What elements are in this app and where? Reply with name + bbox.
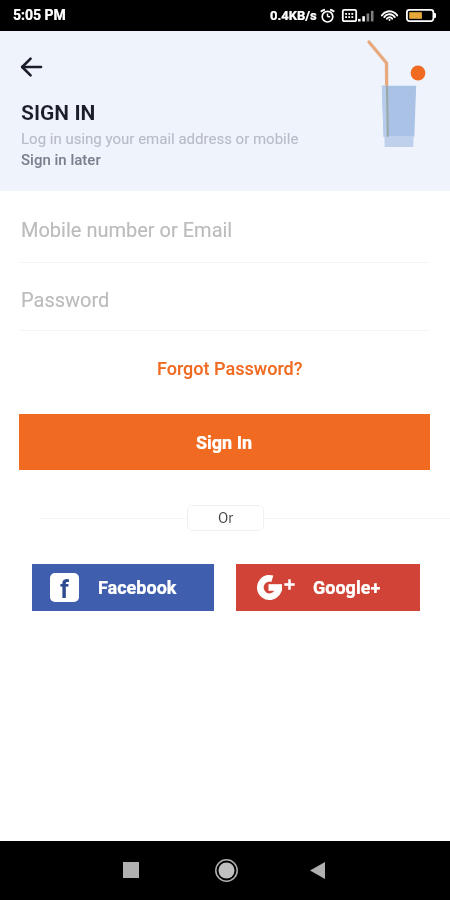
staticText: f xyxy=(60,575,69,604)
staticText: Mobile number or Email xyxy=(21,218,233,241)
staticText: Sign In xyxy=(196,432,253,453)
button[interactable]: Google+ xyxy=(236,564,420,611)
button[interactable]: Password xyxy=(0,275,450,331)
staticText: Password xyxy=(21,288,110,311)
staticText: SIGN IN xyxy=(21,101,96,126)
staticText: Log in using your email address or mobil… xyxy=(21,130,299,148)
button[interactable]: Back xyxy=(293,846,341,894)
button[interactable]: Forgot Password? xyxy=(5,353,450,383)
button[interactable]: Back xyxy=(16,52,44,80)
button[interactable]: Mobile number or Email xyxy=(0,206,450,263)
button[interactable]: Recents xyxy=(107,846,155,894)
staticText: Google+ xyxy=(313,577,381,598)
button[interactable]: f xyxy=(32,564,214,611)
button[interactable]: Sign in later xyxy=(21,151,101,169)
button[interactable]: Sign In xyxy=(19,414,430,470)
staticText: Or xyxy=(218,509,234,527)
staticText: Facebook xyxy=(98,577,177,598)
staticText: 0.4KB/s xyxy=(270,8,317,23)
staticText: 5:05 PM xyxy=(13,7,66,23)
button[interactable]: Home xyxy=(202,846,250,894)
staticText: Forgot Password? xyxy=(157,358,303,379)
button[interactable]: Or xyxy=(187,505,264,531)
